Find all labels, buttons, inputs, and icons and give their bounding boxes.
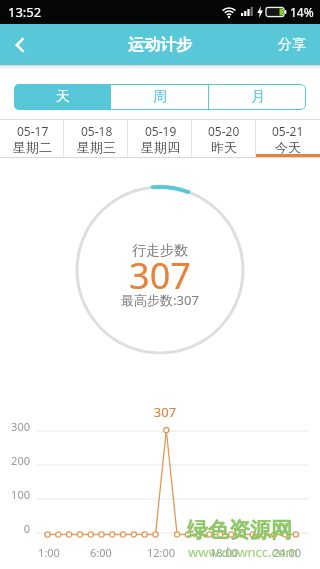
staticText: 05-20 xyxy=(208,123,240,139)
button[interactable]: 05-19 xyxy=(128,120,192,157)
staticText: 昨天 xyxy=(211,139,237,155)
staticText: 今天 xyxy=(275,139,301,155)
button[interactable]: 分享 xyxy=(264,26,320,64)
staticText: 05-19 xyxy=(145,123,177,139)
staticText: 星期四 xyxy=(141,139,180,155)
staticText: 绿色资源网 xyxy=(187,517,292,543)
button[interactable]: 05-20 xyxy=(192,120,256,157)
staticText: 12:00 xyxy=(137,545,185,560)
button[interactable]: 月 xyxy=(209,84,306,110)
staticText: 行走步数 xyxy=(0,242,320,260)
staticText: 0 xyxy=(0,521,30,536)
button[interactable]: 周 xyxy=(111,84,208,110)
staticText: 05-17 xyxy=(17,123,49,139)
button[interactable]: 05-18 xyxy=(64,120,128,157)
staticText: 200 xyxy=(0,453,30,468)
staticText: 星期三 xyxy=(77,139,116,155)
button[interactable]: 05-17 xyxy=(0,120,64,157)
staticText: 05-18 xyxy=(81,123,113,139)
staticText: www.downcc.com xyxy=(188,543,298,561)
staticText: 24:00 xyxy=(263,545,311,560)
staticText: 星期二 xyxy=(13,139,52,155)
staticText: 18:00 xyxy=(200,545,248,560)
staticText: 05-21 xyxy=(272,123,304,139)
button[interactable]: 05-21 xyxy=(256,120,320,157)
staticText: 13:52 xyxy=(8,3,42,21)
staticText: 天 xyxy=(56,88,70,106)
staticText: 100 xyxy=(0,487,30,502)
staticText: 6:00 xyxy=(77,545,125,560)
button[interactable] xyxy=(0,25,40,65)
button[interactable]: 天 xyxy=(14,84,111,110)
staticText: 307 xyxy=(145,403,185,421)
staticText: 300 xyxy=(0,419,30,434)
staticText: 14% xyxy=(290,4,314,20)
staticText: 307 xyxy=(0,251,320,300)
staticText: 分享 xyxy=(278,36,306,54)
staticText: 周 xyxy=(153,88,167,106)
staticText: 1:00 xyxy=(25,545,73,560)
staticText: 运动计步 xyxy=(128,35,192,55)
staticText: 最高步数:307 xyxy=(0,291,320,309)
staticText: 月 xyxy=(251,88,265,106)
